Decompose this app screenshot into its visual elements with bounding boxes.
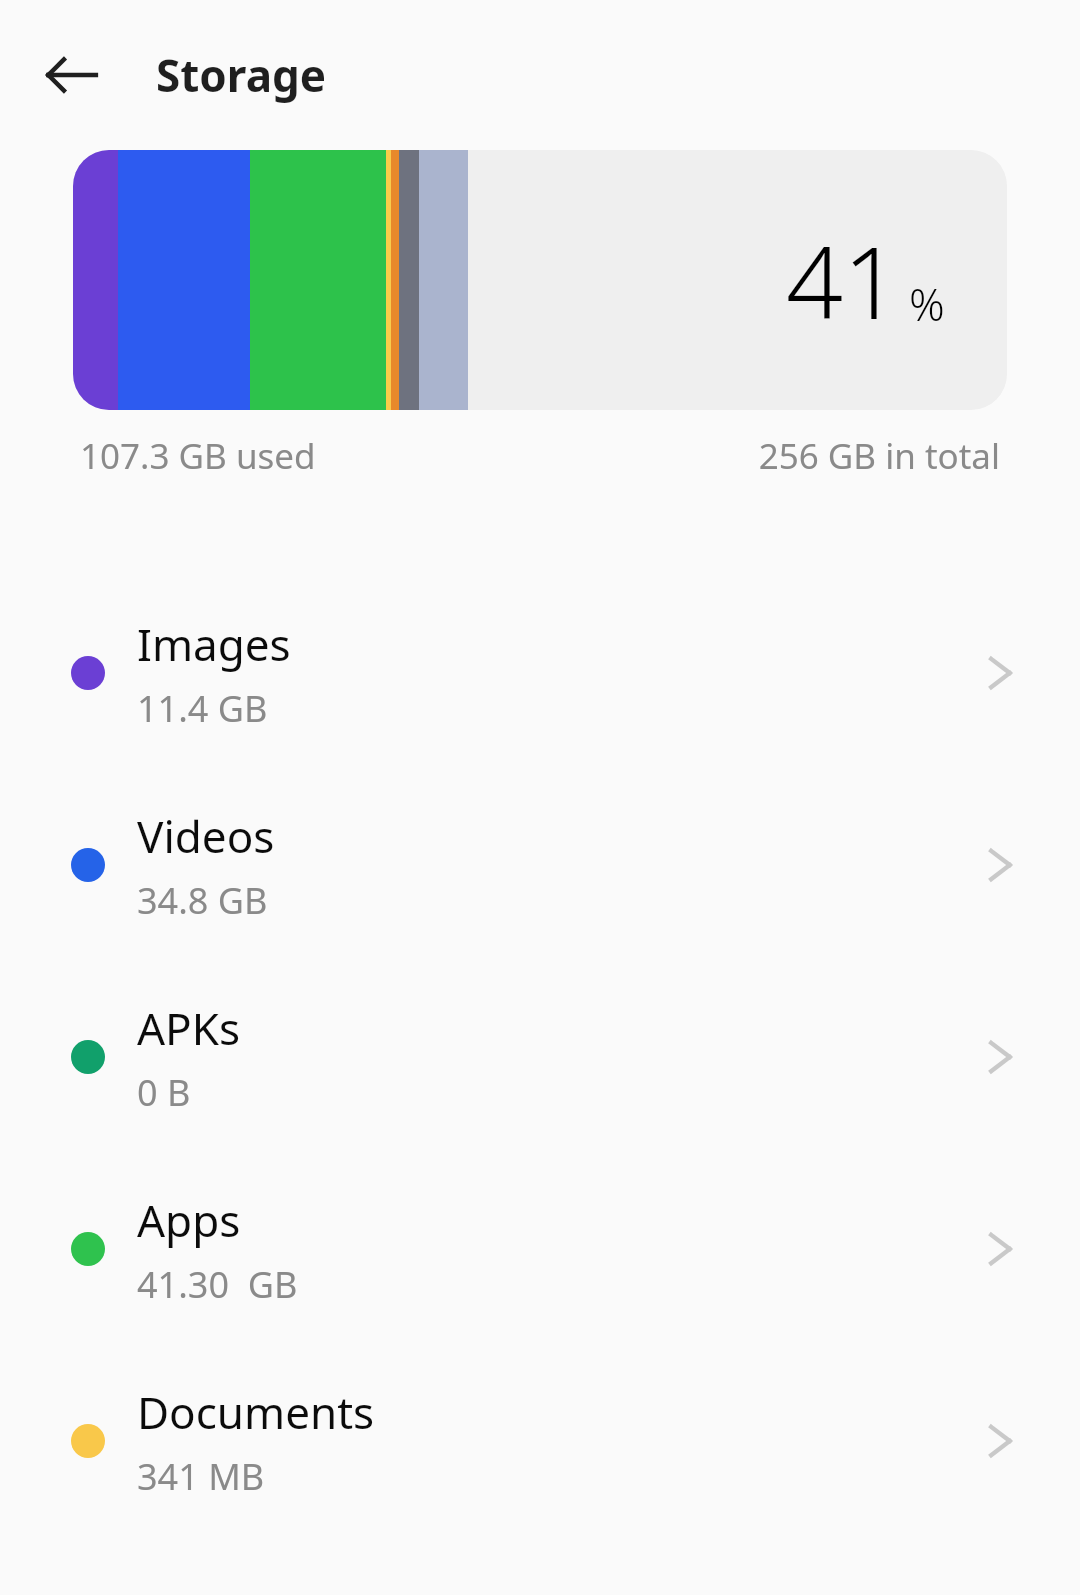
button[interactable]: APKs	[0, 961, 1080, 1153]
button[interactable]: Documents	[0, 1345, 1080, 1537]
staticText: Videos	[137, 806, 275, 866]
staticText: 34.8 GB	[137, 876, 268, 925]
button[interactable]: Images	[0, 577, 1080, 769]
staticText: Apps	[137, 1190, 241, 1250]
staticText: APKs	[137, 998, 241, 1058]
staticText: Documents	[137, 1382, 375, 1442]
staticText: 107.3 GB used	[80, 432, 316, 480]
staticText: %	[909, 274, 945, 334]
staticText: 41	[786, 212, 901, 348]
staticText: 256 GB in total	[758, 432, 1000, 480]
staticText: 41.30 GB	[137, 1260, 298, 1309]
button[interactable]: Videos	[0, 769, 1080, 961]
staticText: Storage	[156, 45, 327, 105]
staticText: Images	[137, 614, 291, 674]
staticText: 11.4 GB	[137, 684, 268, 733]
staticText: 341 MB	[137, 1452, 265, 1501]
button[interactable]: Apps	[0, 1153, 1080, 1345]
button[interactable]: Back	[40, 43, 104, 107]
staticText: 0 B	[137, 1068, 191, 1117]
